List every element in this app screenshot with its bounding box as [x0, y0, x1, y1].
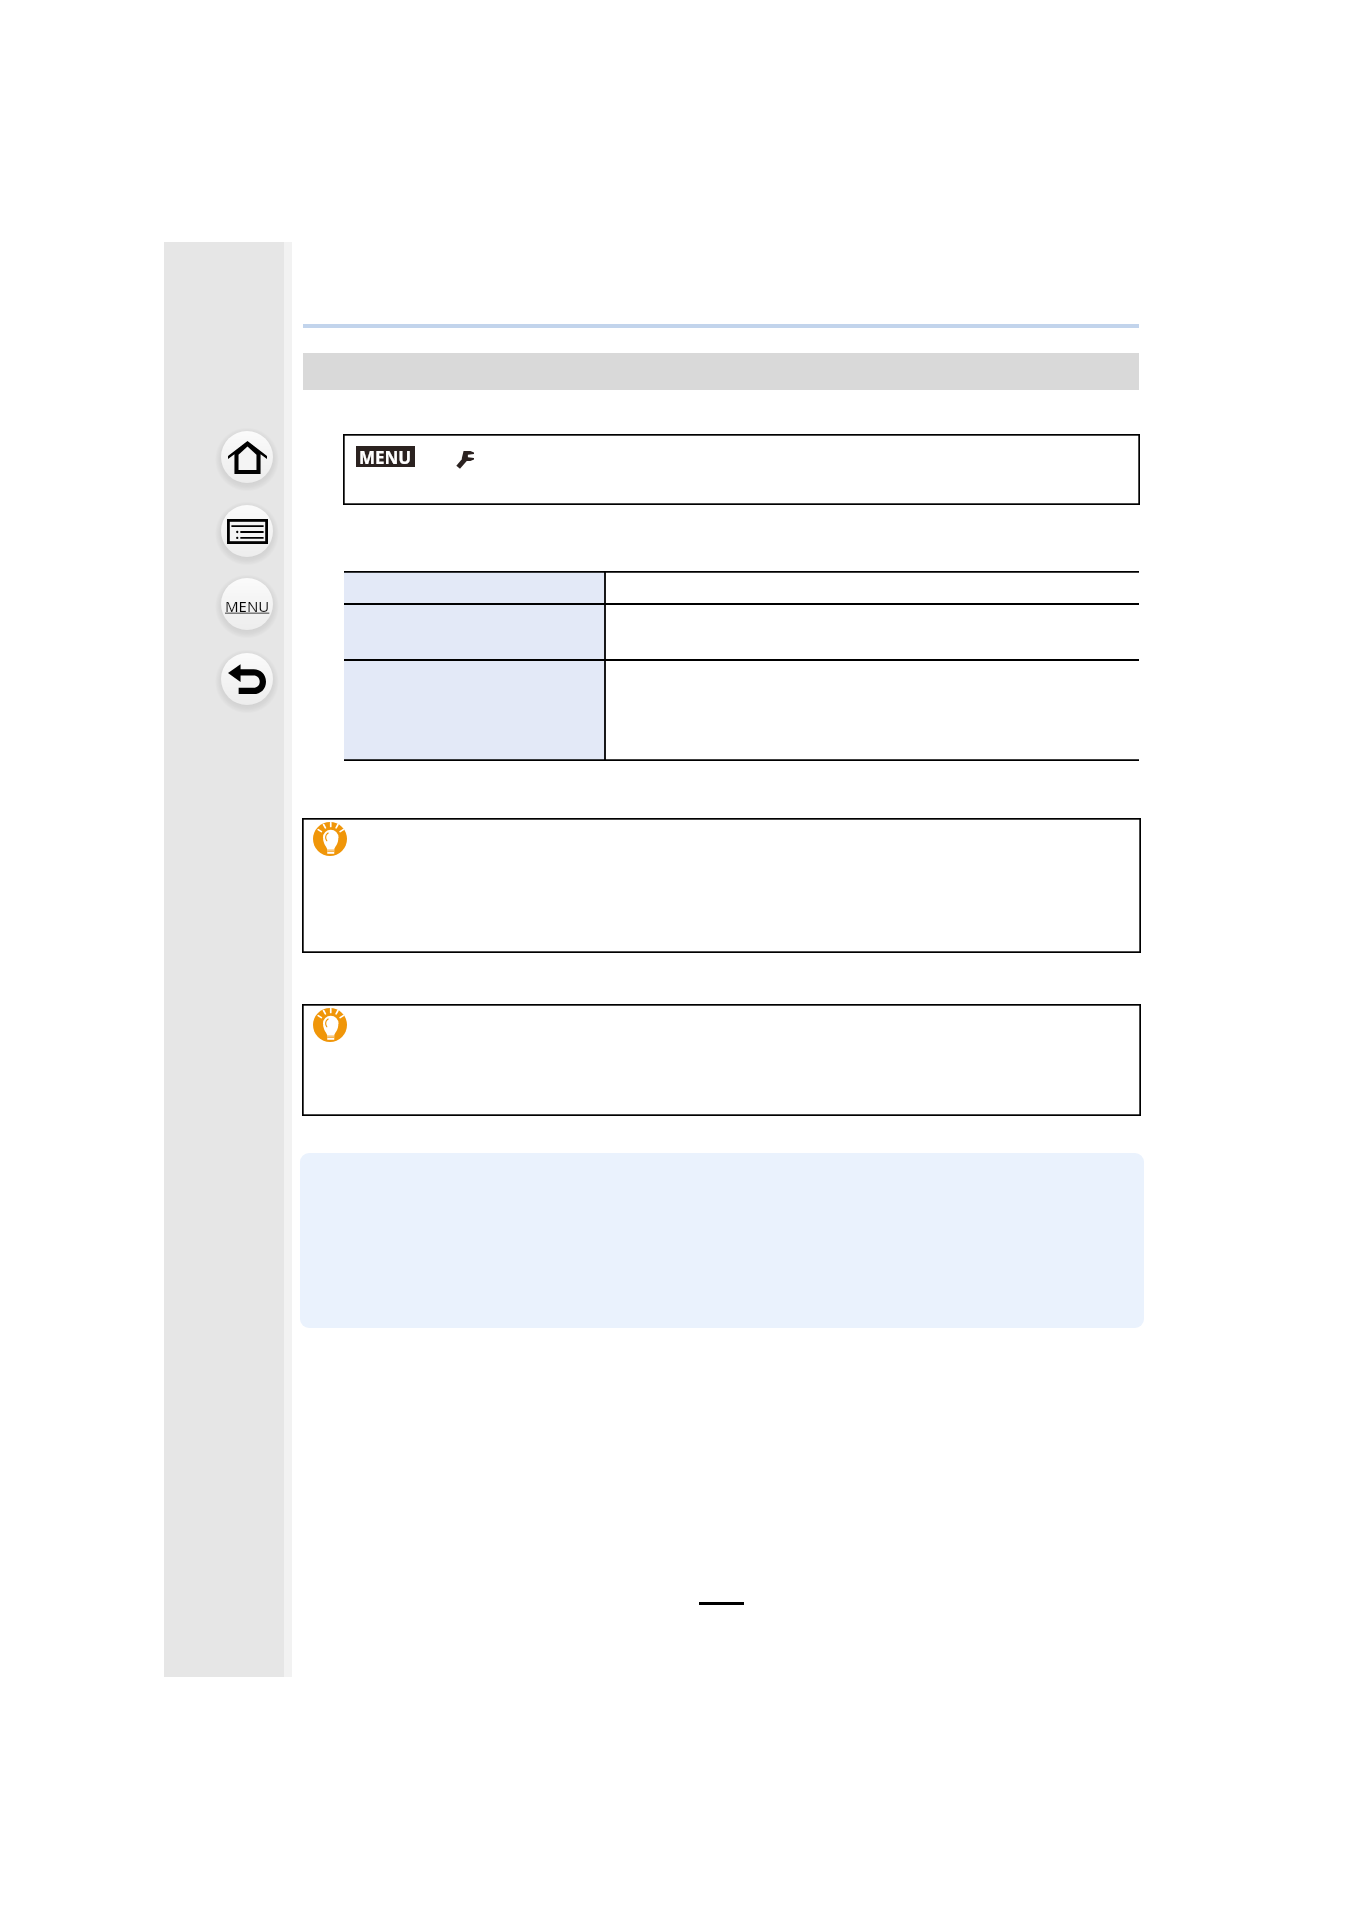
staticText: MENU [359, 446, 412, 467]
button[interactable]: Menu [215, 572, 279, 636]
button[interactable]: Table of contents [215, 499, 279, 563]
button[interactable]: Home [215, 425, 279, 489]
other: Setup menu [456, 449, 474, 468]
button[interactable]: MENU [343, 434, 1140, 505]
button[interactable]: Back [215, 647, 279, 711]
staticText: MENU [225, 596, 270, 616]
